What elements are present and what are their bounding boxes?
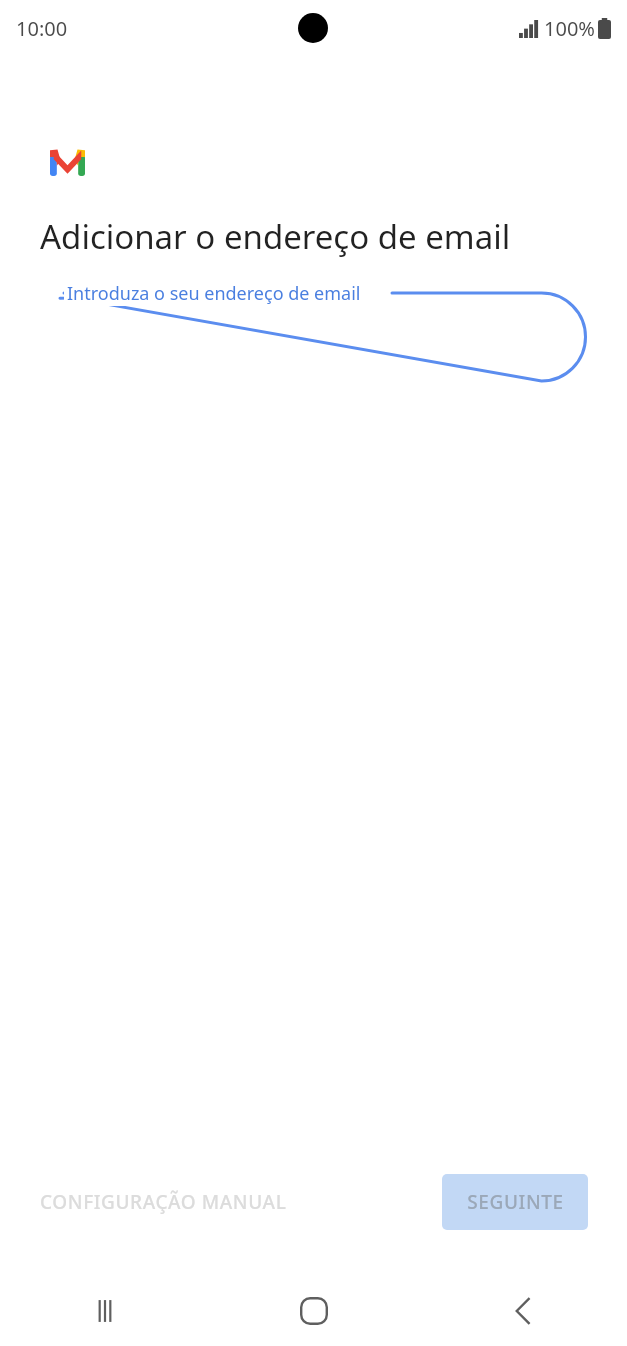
- staticText: Adicionar o endereço de email: [40, 214, 511, 259]
- staticText: SEGUINTE: [467, 1189, 564, 1215]
- staticText: Introduza o seu endereço de email: [67, 281, 361, 306]
- staticText: 100%: [544, 15, 595, 42]
- button[interactable]: Back: [418, 1276, 627, 1346]
- button[interactable]: SEGUINTE: [442, 1174, 588, 1230]
- button[interactable]: Recent apps: [0, 1276, 209, 1346]
- staticText: 10:00: [16, 15, 68, 42]
- button[interactable]: Home: [209, 1276, 418, 1346]
- button[interactable]: Introduza o seu endereço de email: [40, 281, 587, 385]
- button[interactable]: CONFIGURAÇÃO MANUAL: [28, 1179, 299, 1225]
- staticText: CONFIGURAÇÃO MANUAL: [40, 1189, 287, 1215]
